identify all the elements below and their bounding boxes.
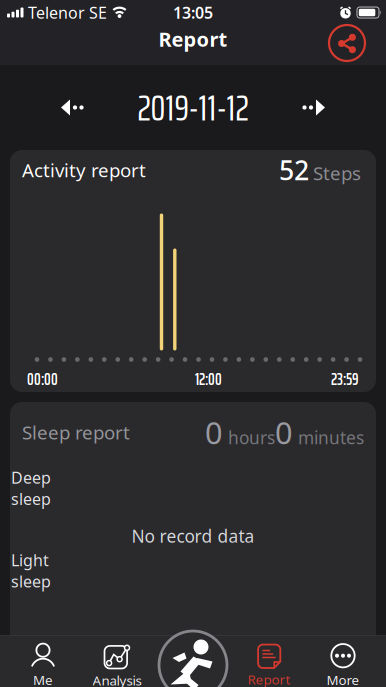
- staticText: 23:59: [331, 366, 359, 392]
- button[interactable]: [158, 630, 228, 687]
- staticText: Steps: [313, 161, 361, 185]
- staticText: Report: [247, 670, 290, 687]
- button[interactable]: 2019-11-12: [137, 78, 248, 137]
- staticText: More: [326, 671, 359, 687]
- staticText: Telenor SE: [28, 2, 107, 23]
- staticText: 12:00: [195, 366, 222, 392]
- staticText: 13:05: [173, 2, 213, 23]
- staticText: hours: [223, 426, 275, 449]
- staticText: minutes: [293, 426, 364, 449]
- staticText: 00:00: [27, 366, 58, 392]
- button[interactable]: [302, 99, 325, 115]
- staticText: Light sleep: [11, 549, 51, 592]
- staticText: 2019-11-12: [137, 78, 248, 137]
- button[interactable]: [328, 24, 366, 62]
- staticText: Analysis: [92, 671, 141, 687]
- staticText: 0: [275, 412, 293, 453]
- staticText: Me: [33, 671, 53, 687]
- staticText: Sleep report: [22, 420, 130, 445]
- button[interactable]: Me: [6, 636, 80, 687]
- staticText: 0: [205, 412, 223, 453]
- staticText: Report: [158, 26, 227, 52]
- staticText: Deep sleep: [11, 467, 51, 509]
- button[interactable]: More: [306, 636, 380, 687]
- button[interactable]: Report: [232, 636, 306, 687]
- staticText: 52: [279, 152, 309, 188]
- button[interactable]: [61, 99, 84, 115]
- button[interactable]: Analysis: [80, 636, 154, 687]
- staticText: No record data: [131, 524, 254, 547]
- staticText: Activity report: [22, 158, 146, 182]
